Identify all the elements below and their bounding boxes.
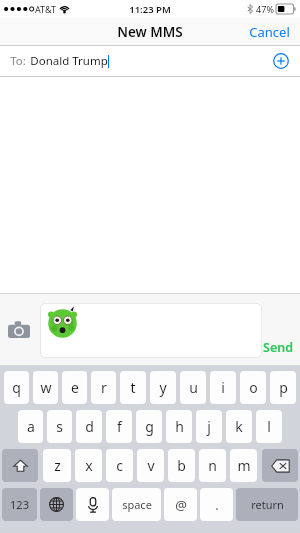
button[interactable]: y xyxy=(150,371,176,404)
staticText: s xyxy=(56,417,63,436)
staticText: o xyxy=(249,378,258,397)
staticText: i xyxy=(221,378,225,397)
button[interactable]: 123 xyxy=(2,488,37,521)
button[interactable]: z xyxy=(43,449,71,482)
staticText: h xyxy=(175,417,184,436)
staticText: m xyxy=(237,456,251,475)
button[interactable]: b xyxy=(168,449,195,482)
button[interactable]: w xyxy=(33,371,58,404)
button[interactable]: Camera xyxy=(4,314,34,344)
button[interactable]: f xyxy=(106,410,132,443)
button[interactable]: Dictate xyxy=(76,488,109,521)
staticText: k xyxy=(235,417,243,436)
button[interactable]: Send xyxy=(259,337,297,358)
button[interactable]: c xyxy=(106,449,133,482)
staticText: 123 xyxy=(10,497,29,512)
staticText: c xyxy=(116,456,123,475)
staticText: return xyxy=(251,497,284,512)
staticText: x xyxy=(85,456,93,475)
button[interactable]: s xyxy=(47,410,72,443)
staticText: . xyxy=(215,496,219,514)
staticText: v xyxy=(147,456,155,475)
button[interactable]: p xyxy=(270,371,296,404)
button[interactable]: return xyxy=(236,488,298,521)
button[interactable]: d xyxy=(76,410,102,443)
staticText: @ xyxy=(175,496,187,514)
button[interactable]: Shift xyxy=(2,449,38,482)
staticText: t xyxy=(130,378,136,397)
staticText: d xyxy=(85,417,94,436)
button[interactable]: @ xyxy=(164,488,197,521)
button[interactable] xyxy=(40,303,262,358)
button[interactable]: u xyxy=(180,371,206,404)
button[interactable]: . xyxy=(200,488,233,521)
staticText: 11:23 PM xyxy=(129,3,171,16)
staticText: p xyxy=(279,378,288,397)
staticText: w xyxy=(40,378,52,397)
staticText: space xyxy=(122,497,152,512)
button[interactable]: Change keyboard xyxy=(40,488,73,521)
staticText: e xyxy=(71,378,79,397)
staticText: u xyxy=(189,378,198,397)
staticText: 47% xyxy=(256,3,274,15)
button[interactable]: o xyxy=(240,371,266,404)
staticText: r xyxy=(101,378,107,397)
button[interactable]: k xyxy=(226,410,252,443)
button[interactable]: n xyxy=(199,449,226,482)
button[interactable]: a xyxy=(18,410,43,443)
staticText: n xyxy=(208,456,217,475)
button[interactable]: r xyxy=(91,371,116,404)
staticText: q xyxy=(12,378,21,397)
button[interactable]: Backspace xyxy=(262,449,298,482)
button[interactable]: i xyxy=(210,371,236,404)
staticText: To: xyxy=(10,53,26,69)
staticText: j xyxy=(207,417,211,436)
button[interactable]: Cancel xyxy=(239,19,300,45)
staticText: g xyxy=(145,417,154,436)
staticText: AT&T xyxy=(35,3,56,15)
staticText: l xyxy=(267,417,271,436)
button[interactable]: v xyxy=(137,449,164,482)
button[interactable]: m xyxy=(230,449,257,482)
button[interactable]: j xyxy=(196,410,222,443)
staticText: Send xyxy=(263,339,293,356)
button[interactable]: x xyxy=(75,449,102,482)
button[interactable]: t xyxy=(120,371,146,404)
button[interactable]: e xyxy=(62,371,87,404)
staticText: a xyxy=(27,417,35,436)
button[interactable]: h xyxy=(166,410,192,443)
staticText: f xyxy=(117,417,122,436)
button[interactable]: space xyxy=(112,488,161,521)
staticText: Donald Trump xyxy=(30,53,108,69)
staticText: b xyxy=(177,456,186,475)
button[interactable]: Add contact xyxy=(269,49,293,73)
staticText: Cancel xyxy=(249,23,290,41)
staticText: z xyxy=(54,456,61,475)
staticText: y xyxy=(159,378,167,397)
staticText: New MMS xyxy=(117,23,183,41)
button[interactable]: l xyxy=(256,410,282,443)
button[interactable]: g xyxy=(136,410,162,443)
button[interactable]: q xyxy=(4,371,29,404)
